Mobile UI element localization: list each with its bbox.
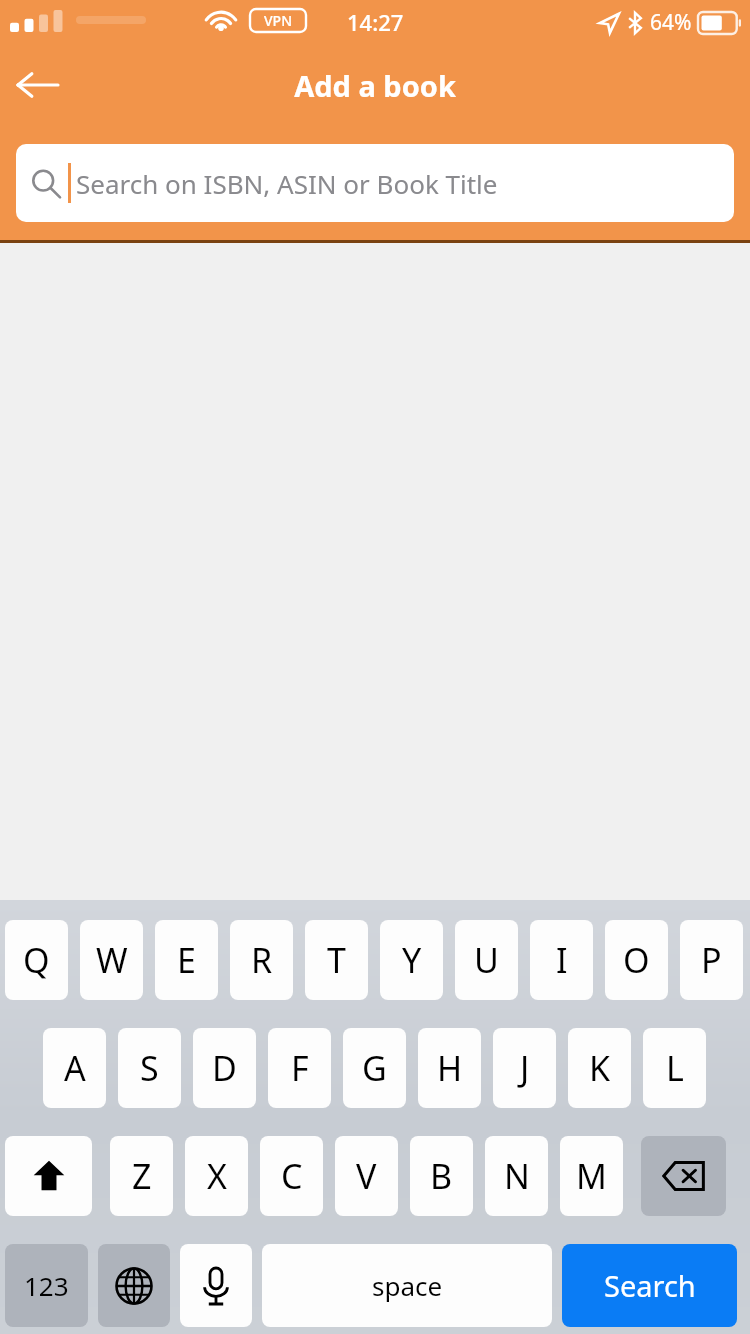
staticText: 14:27 <box>347 7 404 37</box>
staticText: X <box>207 1153 227 1199</box>
staticText: Search <box>604 1266 696 1305</box>
button[interactable]: G <box>343 1028 406 1108</box>
button[interactable]: Back <box>6 53 70 117</box>
staticText: 123 <box>24 1268 69 1303</box>
button[interactable]: Search on ISBN, ASIN or Book Title <box>16 144 734 222</box>
staticText: P <box>701 937 722 983</box>
button[interactable]: 123 <box>5 1244 88 1327</box>
staticText: V <box>356 1153 377 1199</box>
staticText: A <box>64 1045 86 1091</box>
button[interactable]: X <box>185 1136 248 1216</box>
staticText: S <box>140 1045 159 1091</box>
staticText: Z <box>132 1153 152 1199</box>
staticText: Search on ISBN, ASIN or Book Title <box>76 166 498 201</box>
staticText: K <box>589 1045 611 1091</box>
staticText: C <box>281 1153 303 1199</box>
button[interactable]: N <box>485 1136 548 1216</box>
button[interactable]: D <box>193 1028 256 1108</box>
button[interactable]: Shift <box>5 1136 92 1216</box>
button[interactable]: B <box>410 1136 473 1216</box>
button[interactable]: Backspace <box>641 1136 726 1216</box>
staticText: B <box>430 1153 453 1199</box>
staticText: Add a book <box>294 66 456 105</box>
button[interactable]: U <box>455 920 518 1000</box>
staticText: T <box>327 937 346 983</box>
staticText: L <box>666 1045 684 1091</box>
button[interactable]: L <box>643 1028 706 1108</box>
staticText: M <box>576 1153 607 1199</box>
button[interactable]: W <box>80 920 143 1000</box>
button[interactable]: V <box>335 1136 398 1216</box>
button[interactable]: space <box>262 1244 552 1327</box>
button[interactable]: C <box>260 1136 323 1216</box>
staticText: N <box>504 1153 530 1199</box>
staticText: 64% <box>650 8 692 37</box>
button[interactable]: M <box>560 1136 623 1216</box>
staticText: H <box>437 1045 463 1091</box>
staticText: U <box>474 937 499 983</box>
button[interactable]: P <box>680 920 743 1000</box>
button[interactable]: Q <box>5 920 68 1000</box>
button[interactable]: A <box>43 1028 106 1108</box>
button[interactable]: Z <box>110 1136 173 1216</box>
staticText: O <box>623 937 650 983</box>
staticText: W <box>96 937 128 983</box>
button[interactable]: K <box>568 1028 631 1108</box>
button[interactable]: Change keyboard <box>98 1244 170 1327</box>
staticText: VPN <box>264 11 293 30</box>
staticText: F <box>291 1045 309 1091</box>
button[interactable]: T <box>305 920 368 1000</box>
staticText: R <box>251 937 273 983</box>
button[interactable]: O <box>605 920 668 1000</box>
button[interactable]: Search <box>562 1244 737 1327</box>
staticText: space <box>372 1268 443 1303</box>
button[interactable]: Y <box>380 920 443 1000</box>
button[interactable]: R <box>230 920 293 1000</box>
staticText: I <box>556 937 568 983</box>
button[interactable]: F <box>268 1028 331 1108</box>
staticText: G <box>362 1045 387 1091</box>
button[interactable]: E <box>155 920 218 1000</box>
button[interactable]: S <box>118 1028 181 1108</box>
button[interactable]: Dictate <box>180 1244 252 1327</box>
staticText: J <box>520 1045 530 1091</box>
staticText: Y <box>402 937 422 983</box>
button[interactable]: J <box>493 1028 556 1108</box>
button[interactable]: H <box>418 1028 481 1108</box>
staticText: E <box>177 937 196 983</box>
staticText: Q <box>23 937 50 983</box>
staticText: D <box>212 1045 237 1091</box>
button[interactable]: I <box>530 920 593 1000</box>
